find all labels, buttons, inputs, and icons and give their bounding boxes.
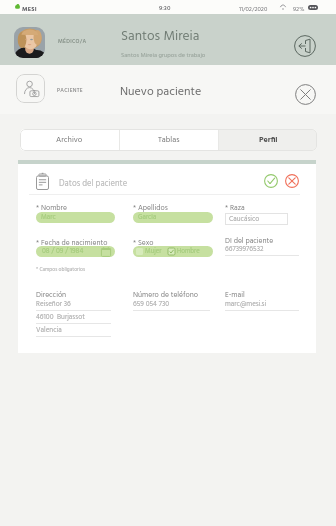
button[interactable]: Archivo	[20, 129, 119, 151]
button[interactable]: Cerrar	[292, 81, 318, 107]
button[interactable]: 659 054 730	[133, 299, 210, 311]
staticText: Nuevo paciente	[120, 82, 202, 101]
staticText: MESI	[22, 4, 37, 14]
button[interactable]: Cerrar sesión	[292, 33, 318, 59]
staticText: 9:30	[159, 3, 171, 13]
staticText: * Raza	[225, 202, 245, 214]
button[interactable]: Garcia	[133, 212, 213, 223]
staticText: 46100 Burjassot	[36, 312, 85, 323]
staticText: MÉDICO/A	[58, 37, 87, 46]
staticText: Marc	[41, 212, 56, 223]
button[interactable]: Cancelar	[283, 172, 301, 190]
button[interactable]: Marc	[36, 212, 115, 223]
button[interactable]: Foto del paciente	[16, 74, 45, 103]
staticText: Reiseñor 36	[36, 299, 71, 310]
button[interactable]: Guardar	[262, 172, 280, 190]
button[interactable]: 46100 Burjassot	[36, 312, 111, 324]
staticText: 659 054 730	[133, 299, 170, 310]
staticText: 11/02/2020	[239, 4, 268, 14]
button[interactable]: marc@mesi.si	[225, 299, 299, 311]
staticText: PACIENTE	[57, 86, 83, 95]
staticText: DI del paciente	[225, 235, 274, 247]
staticText: * Fecha de nacimiento	[36, 237, 108, 249]
staticText: Tablas	[158, 134, 180, 147]
staticText: Valencia	[36, 325, 62, 336]
staticText: 92%	[293, 4, 305, 14]
button[interactable]: Reiseñor 36	[36, 299, 111, 311]
button[interactable]: Valencia	[36, 325, 111, 337]
button[interactable]: Mujer	[135, 246, 163, 257]
button[interactable]: 66739976532	[225, 244, 299, 256]
staticText: Santos Mireia	[121, 26, 200, 48]
button[interactable]: Tablas	[120, 129, 218, 151]
button[interactable]: Caucásico	[225, 213, 288, 225]
staticText: * Nombre	[36, 202, 67, 214]
staticText: Caucásico	[229, 214, 260, 225]
staticText: Número de teléfono	[133, 289, 198, 301]
button[interactable]: Hombre	[167, 246, 201, 257]
button[interactable]: Perfil	[219, 129, 317, 151]
staticText: Dirección	[36, 289, 67, 301]
staticText: Datos del paciente	[59, 177, 128, 191]
staticText: Mujer	[145, 246, 162, 257]
staticText: * Campos obligatorios	[36, 266, 86, 274]
staticText: * Apellidos	[133, 202, 168, 214]
staticText: Santos Mireia grupos de trabajo	[121, 50, 206, 60]
button[interactable]: Foto del médico	[14, 27, 45, 58]
staticText: E-mail	[225, 289, 245, 301]
staticText: Hombre	[177, 246, 200, 257]
staticText: Garcia	[138, 212, 157, 223]
staticText: 08 / 09 / 1984	[42, 246, 84, 257]
staticText: 66739976532	[225, 244, 264, 255]
staticText: marc@mesi.si	[225, 299, 267, 310]
staticText: Perfil	[259, 134, 278, 147]
staticText: Archivo	[56, 134, 83, 147]
button[interactable]: 08 / 09 / 1984	[36, 246, 115, 257]
staticText: * Sexo	[133, 237, 154, 249]
